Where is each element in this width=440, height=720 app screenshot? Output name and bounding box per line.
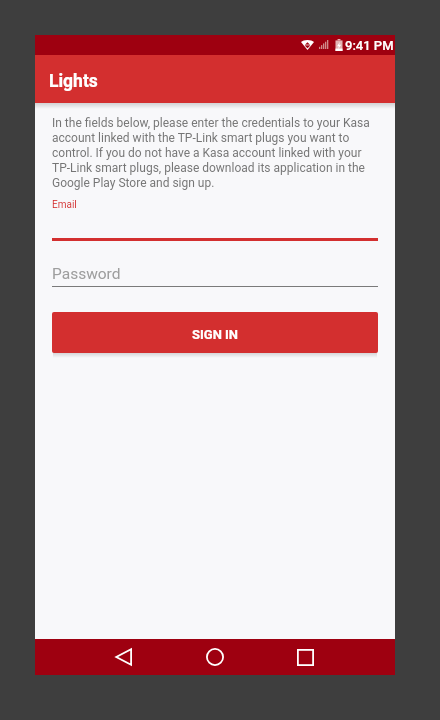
staticText: Password — [52, 265, 121, 283]
staticText: 9:41 PM — [345, 38, 394, 53]
button[interactable]: Back — [99, 639, 147, 675]
button[interactable]: SIGN IN — [52, 312, 378, 353]
button[interactable]: Email — [52, 195, 378, 241]
staticText: In the fields below, please enter the cr… — [52, 116, 378, 189]
staticText: Email — [52, 199, 77, 211]
staticText: Lights — [49, 71, 98, 92]
button[interactable]: Home — [191, 639, 239, 675]
button[interactable]: Recent apps — [281, 639, 329, 675]
staticText: SIGN IN — [192, 327, 239, 342]
button[interactable]: Password — [52, 261, 378, 287]
